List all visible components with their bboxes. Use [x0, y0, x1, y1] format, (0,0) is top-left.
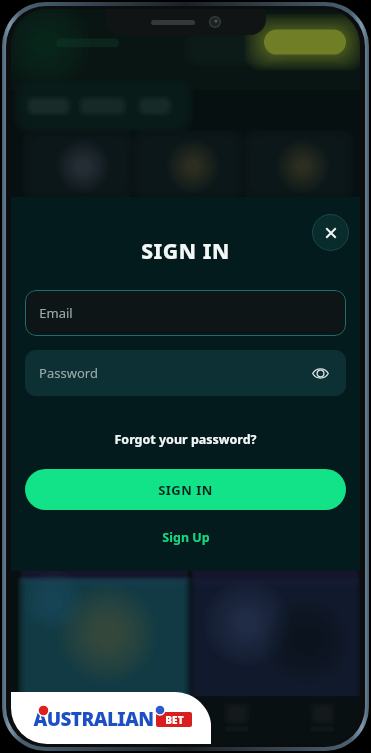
- button[interactable]: Email: [25, 290, 346, 336]
- staticText: Password: [39, 364, 98, 382]
- button[interactable]: Sign Up: [154, 526, 218, 549]
- staticText: Sign Up: [162, 529, 210, 546]
- button[interactable]: Close: [312, 214, 349, 251]
- button[interactable]: SIGN IN: [25, 469, 346, 510]
- staticText: Email: [39, 304, 73, 322]
- staticText: Forgot your password?: [114, 431, 257, 448]
- button[interactable]: Show password: [308, 361, 332, 385]
- button[interactable]: Forgot your password?: [108, 428, 263, 451]
- staticText: AUSTRALIAN: [33, 706, 154, 732]
- staticText: SIGN IN: [141, 237, 230, 266]
- button[interactable]: Password: [25, 350, 346, 396]
- staticText: BET: [165, 713, 184, 727]
- staticText: SIGN IN: [158, 481, 213, 499]
